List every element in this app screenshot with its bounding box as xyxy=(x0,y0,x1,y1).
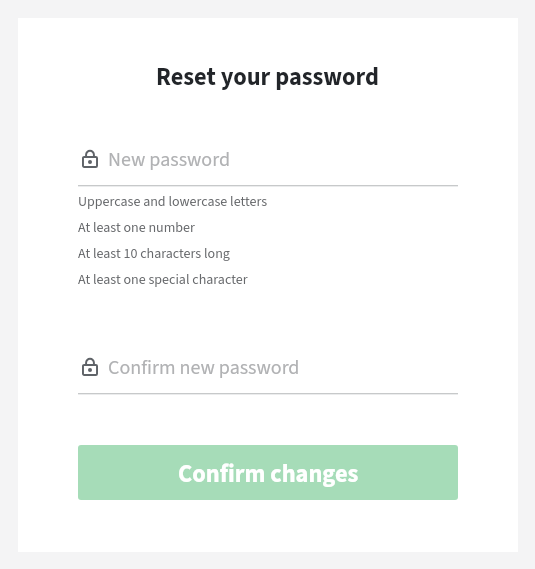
staticText: At least one special character xyxy=(78,270,248,290)
button[interactable]: Confirm changes xyxy=(78,445,458,500)
staticText: Uppercase and lowercase letters xyxy=(78,192,268,212)
other: Password xyxy=(82,150,98,168)
staticText: Reset your password xyxy=(0,60,535,95)
other: Password xyxy=(82,358,98,376)
staticText: Confirm new password xyxy=(108,354,300,380)
staticText: New password xyxy=(108,146,230,172)
button[interactable]: Password xyxy=(78,354,458,380)
staticText: Confirm changes xyxy=(178,457,359,492)
button[interactable]: Password xyxy=(78,146,458,172)
staticText: At least 10 characters long xyxy=(78,244,230,264)
staticText: At least one number xyxy=(78,218,195,238)
